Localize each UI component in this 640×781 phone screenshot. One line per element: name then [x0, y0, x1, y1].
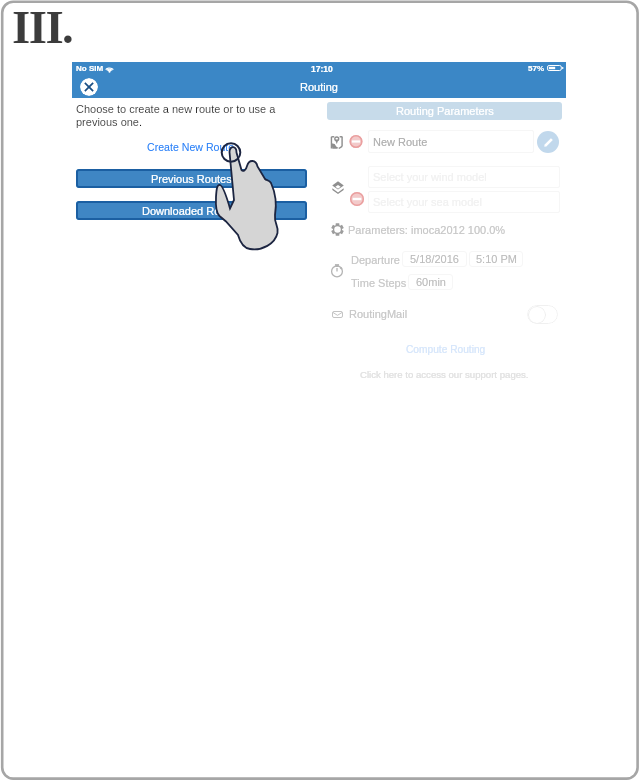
staticText: 57% — [528, 64, 545, 73]
staticText: New Route — [373, 136, 428, 148]
button[interactable]: Downloaded Routes — [76, 201, 307, 220]
staticText: Select your sea model — [373, 196, 482, 208]
staticText: Select your wind model — [373, 171, 487, 183]
staticText: 60min — [416, 276, 446, 288]
staticText: 5:10 PM — [476, 253, 517, 265]
button[interactable]: Click here to access our support pages. — [327, 368, 562, 380]
button[interactable]: 60min — [408, 274, 453, 290]
button[interactable]: Select your sea model — [368, 191, 560, 213]
staticText: Departure — [351, 254, 400, 266]
staticText: RoutingMail — [349, 308, 408, 320]
button[interactable]: Create New Route — [72, 141, 306, 153]
staticText: Compute Routing — [406, 344, 486, 355]
button[interactable]: New Route — [368, 130, 534, 153]
staticText: Choose to create a new route or to use a… — [76, 103, 276, 129]
staticText: Downloaded Routes — [142, 205, 242, 217]
button[interactable]: Edit — [537, 131, 559, 153]
button[interactable]: RoutingMail toggle — [527, 305, 558, 324]
button[interactable]: Routing Parameters — [327, 102, 562, 120]
staticText: III. — [12, 1, 73, 53]
staticText: Create New Route — [147, 141, 235, 153]
staticText: No SIM — [76, 64, 104, 73]
staticText: Parameters: imoca2012 100.0% — [348, 224, 506, 236]
staticText: 17:10 — [311, 64, 333, 73]
button[interactable]: Select your wind model — [368, 166, 560, 188]
button[interactable]: Close — [80, 78, 98, 96]
staticText: Previous Routes — [151, 173, 232, 185]
button[interactable]: Previous Routes — [76, 169, 307, 188]
staticText: Time Steps — [351, 277, 407, 289]
button[interactable]: Compute Routing — [327, 343, 562, 356]
button[interactable]: 5:10 PM — [469, 251, 523, 267]
staticText: Click here to access our support pages. — [360, 369, 529, 380]
staticText: Routing — [72, 81, 566, 93]
staticText: 5/18/2016 — [410, 253, 459, 265]
staticText: Routing Parameters — [396, 105, 494, 117]
button[interactable]: 5/18/2016 — [402, 251, 467, 267]
